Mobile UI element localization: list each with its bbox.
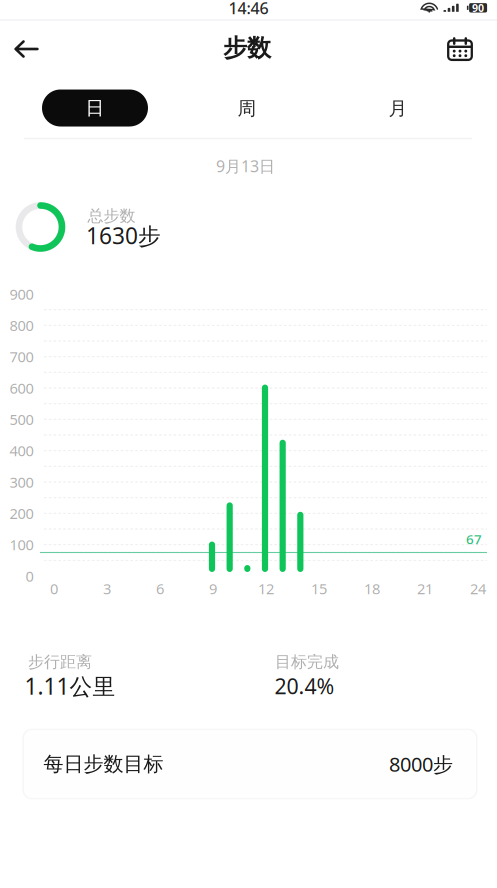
button[interactable]: 日 xyxy=(42,89,148,126)
button[interactable]: 周 xyxy=(194,90,300,127)
staticText: 700 xyxy=(9,347,33,366)
staticText: 800 xyxy=(9,316,33,335)
staticText: 12 xyxy=(258,579,274,598)
staticText: 日 xyxy=(85,96,104,119)
staticText: 900 xyxy=(9,284,33,304)
staticText: 100 xyxy=(9,535,33,554)
button[interactable]: Back xyxy=(0,27,53,71)
staticText: 0 xyxy=(50,579,58,598)
staticText: 9月13日 xyxy=(216,155,275,177)
staticText: 周 xyxy=(237,97,256,120)
staticText: 90 xyxy=(472,1,484,15)
staticText: 9 xyxy=(209,579,217,598)
staticText: 67 xyxy=(466,530,482,548)
staticText: 步行距离 xyxy=(28,652,92,672)
staticText: 15 xyxy=(311,579,327,598)
staticText: 目标完成 xyxy=(275,652,339,672)
staticText: 6 xyxy=(156,579,164,598)
staticText: 总步数 xyxy=(87,206,135,226)
staticText: 500 xyxy=(9,410,33,429)
staticText: 18 xyxy=(364,579,380,598)
button[interactable]: 月 xyxy=(345,90,451,127)
button[interactable]: 每日步数目标 xyxy=(24,730,476,798)
staticText: 400 xyxy=(9,441,33,460)
button[interactable]: Calendar xyxy=(434,25,486,72)
staticText: 600 xyxy=(9,378,33,398)
staticText: 1.11公里 xyxy=(24,671,115,701)
staticText: 3 xyxy=(103,579,111,598)
staticText: 0 xyxy=(25,566,33,586)
staticText: 月 xyxy=(388,97,407,120)
staticText: 300 xyxy=(9,472,33,492)
staticText: 14:46 xyxy=(228,0,268,19)
staticText: 每日步数目标 xyxy=(43,752,163,776)
staticText: 20.4% xyxy=(274,672,334,700)
staticText: 200 xyxy=(9,504,33,523)
staticText: 24 xyxy=(470,579,486,598)
staticText: 21 xyxy=(417,579,433,598)
staticText: 步数 xyxy=(223,33,271,63)
staticText: 1630步 xyxy=(86,220,161,250)
staticText: 8000步 xyxy=(389,751,453,777)
